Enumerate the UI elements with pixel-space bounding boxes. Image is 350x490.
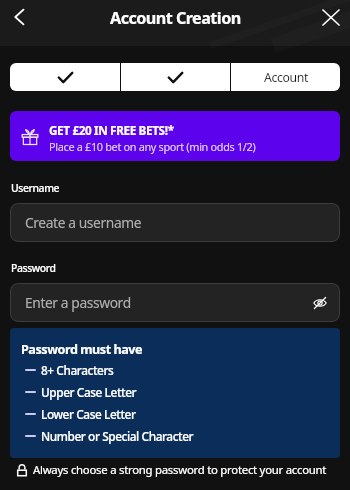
button[interactable]: GET £20 IN FREE BETS!* (10, 111, 340, 161)
button[interactable] (10, 63, 120, 91)
staticText: Enter a password (25, 293, 131, 312)
staticText: GET £20 IN FREE BETS!* (49, 122, 174, 138)
staticText: 8+ Characters (41, 362, 114, 378)
staticText: Password must have (21, 341, 143, 358)
staticText: Always choose a strong password to prote… (33, 462, 327, 478)
staticText: Password (11, 261, 56, 275)
button[interactable]: Close (314, 0, 348, 34)
button[interactable] (121, 63, 230, 91)
button[interactable]: Back (2, 0, 36, 34)
staticText: Account Creation (110, 7, 241, 29)
staticText: Number or Special Character (41, 428, 194, 444)
button[interactable]: Show password (307, 290, 333, 316)
button[interactable]: Create a username (10, 203, 340, 242)
button[interactable]: Account (231, 63, 340, 91)
button[interactable]: Enter a password (10, 283, 340, 322)
staticText: Username (11, 181, 60, 195)
staticText: Lower Case Letter (41, 406, 136, 422)
staticText: Place a £10 bet on any sport (min odds 1… (49, 139, 256, 154)
staticText: Upper Case Letter (41, 384, 137, 400)
staticText: Create a username (25, 213, 142, 232)
staticText: Account (264, 69, 308, 86)
